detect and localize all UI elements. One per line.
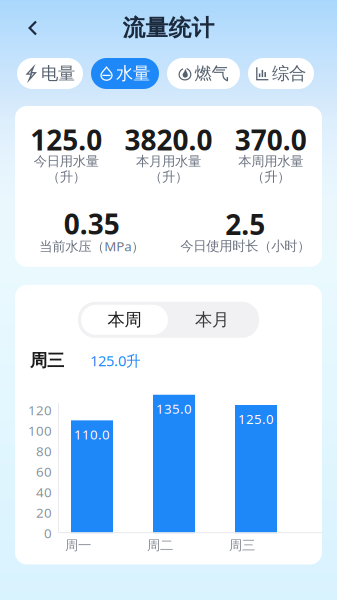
staticText: 3820.0 bbox=[124, 121, 212, 158]
staticText: 流量统计 bbox=[122, 14, 214, 42]
staticText: 今日使用时长（小时） bbox=[180, 238, 310, 254]
staticText: 2.5 bbox=[225, 206, 265, 243]
staticText: 本周 bbox=[107, 309, 141, 330]
button[interactable]: 燃气 bbox=[167, 58, 240, 89]
staticText: 电量 bbox=[41, 63, 75, 84]
staticText: 本月用水量 bbox=[136, 153, 201, 170]
staticText: （升） bbox=[251, 169, 290, 185]
staticText: 0 bbox=[44, 524, 52, 542]
staticText: 60 bbox=[36, 463, 52, 480]
staticText: 20 bbox=[36, 504, 52, 521]
button[interactable]: Back bbox=[18, 13, 48, 43]
staticText: （升） bbox=[149, 169, 188, 185]
staticText: 120 bbox=[28, 401, 52, 419]
staticText: 40 bbox=[36, 483, 52, 501]
staticText: 燃气 bbox=[194, 63, 228, 84]
staticText: 周二 bbox=[147, 537, 173, 553]
staticText: 100 bbox=[28, 422, 52, 439]
staticText: 110.0 bbox=[74, 425, 110, 443]
button[interactable]: 综合 bbox=[248, 58, 314, 89]
staticText: 125.0 bbox=[238, 410, 274, 428]
staticText: 125.0 bbox=[30, 121, 102, 158]
staticText: 370.0 bbox=[235, 121, 307, 158]
button[interactable]: 本周 bbox=[81, 305, 168, 335]
staticText: 本周用水量 bbox=[238, 153, 303, 170]
staticText: 本月 bbox=[195, 309, 229, 330]
staticText: 水量 bbox=[116, 63, 150, 84]
button[interactable]: 电量 bbox=[17, 58, 83, 89]
staticText: 周三 bbox=[30, 350, 64, 371]
staticText: 综合 bbox=[272, 63, 306, 84]
staticText: 周三 bbox=[229, 537, 255, 553]
staticText: 0.35 bbox=[64, 205, 120, 242]
staticText: 周一 bbox=[65, 537, 91, 553]
button[interactable]: 本月 bbox=[168, 305, 256, 335]
button[interactable]: 水量 bbox=[91, 58, 159, 89]
staticText: 当前水压（MPa） bbox=[39, 237, 144, 255]
staticText: 135.0 bbox=[156, 400, 192, 417]
staticText: 80 bbox=[36, 442, 52, 460]
staticText: 125.0升 bbox=[90, 351, 141, 370]
staticText: （升） bbox=[47, 169, 86, 185]
staticText: 今日用水量 bbox=[34, 153, 99, 170]
